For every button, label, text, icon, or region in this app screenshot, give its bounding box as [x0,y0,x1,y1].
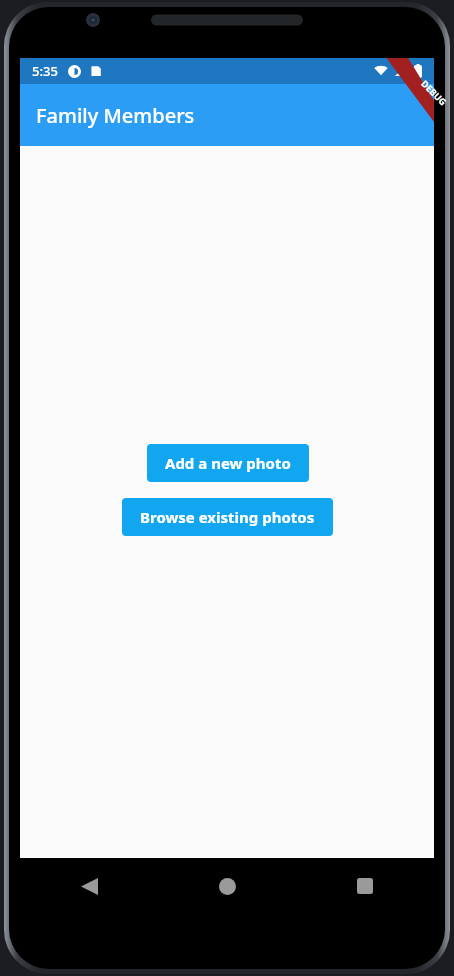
button[interactable]: Browse existing photos [122,498,333,536]
staticText: 5:35 [32,62,58,80]
staticText: Family Members [36,102,195,129]
button[interactable]: Home [158,858,296,914]
button[interactable]: Back [20,858,158,914]
staticText: Browse existing photos [140,507,315,527]
staticText: Add a new photo [165,453,291,473]
staticText: DEBUG [419,77,449,108]
button[interactable]: Recent apps [296,858,434,914]
button[interactable]: Add a new photo [147,444,309,482]
